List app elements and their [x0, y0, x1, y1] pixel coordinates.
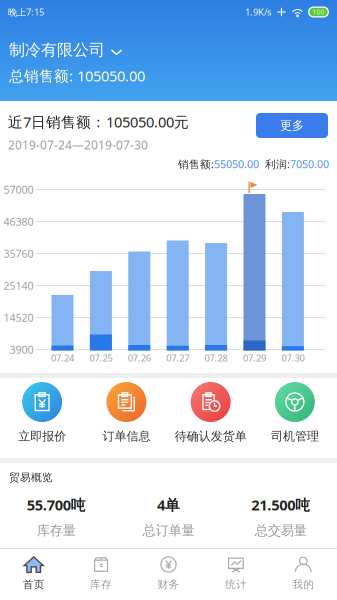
- staticText: 总订单量: [142, 522, 194, 539]
- staticText: 总销售额: 105050.00: [9, 66, 145, 85]
- staticText: 待确认发货单: [175, 429, 247, 444]
- staticText: 07.28: [205, 352, 228, 364]
- staticText: 4单: [157, 495, 180, 514]
- staticText: 07.29: [243, 352, 266, 364]
- staticText: 利润:: [259, 157, 290, 171]
- button[interactable]: 司机管理: [253, 382, 337, 444]
- button[interactable]: 财务: [135, 556, 202, 591]
- button[interactable]: 库存: [67, 556, 135, 591]
- staticText: 57000: [3, 182, 33, 197]
- staticText: 立即报价: [18, 429, 66, 444]
- staticText: 2019-07-24—2019-07-30: [8, 137, 148, 153]
- staticText: 07.27: [166, 352, 189, 364]
- staticText: 100: [312, 8, 324, 16]
- button[interactable]: 首页: [0, 556, 67, 591]
- staticText: 35760: [3, 246, 33, 261]
- staticText: 财务: [157, 578, 179, 591]
- staticText: 我的: [292, 578, 314, 591]
- staticText: 近7日销售额：105050.00元: [8, 112, 189, 131]
- button[interactable]: 待确认发货单: [168, 382, 253, 444]
- staticText: 总交易量: [255, 522, 307, 539]
- staticText: 更多: [280, 118, 304, 133]
- staticText: 46380: [3, 214, 33, 229]
- staticText: 07.25: [89, 352, 112, 364]
- staticText: 统计: [225, 578, 247, 591]
- staticText: 21.500吨: [251, 495, 310, 514]
- button[interactable]: 更多: [256, 113, 328, 138]
- staticText: 库存量: [37, 522, 76, 539]
- staticText: 贸易概览: [9, 471, 53, 484]
- staticText: 07.30: [281, 352, 304, 364]
- staticText: 库存: [90, 578, 112, 591]
- staticText: 25140: [3, 278, 33, 293]
- staticText: 7050.00: [290, 157, 329, 171]
- staticText: 1.9K/s: [245, 6, 271, 18]
- staticText: 制冷有限公司: [9, 40, 105, 60]
- staticText: 销售额:: [178, 157, 214, 171]
- staticText: 07.26: [128, 352, 151, 364]
- staticText: 3900: [9, 342, 33, 357]
- button[interactable]: 我的: [270, 556, 337, 591]
- staticText: 14520: [3, 310, 33, 325]
- button[interactable]: 统计: [202, 556, 270, 591]
- button[interactable]: 立即报价: [0, 382, 84, 444]
- staticText: 55.700吨: [27, 495, 86, 514]
- staticText: 55050.00: [214, 157, 259, 171]
- staticText: 首页: [23, 578, 45, 591]
- staticText: 司机管理: [271, 429, 319, 444]
- button[interactable]: 订单信息: [84, 382, 168, 444]
- staticText: 07.24: [51, 352, 74, 364]
- staticText: 晚上7:15: [8, 6, 44, 18]
- staticText: 订单信息: [102, 429, 150, 444]
